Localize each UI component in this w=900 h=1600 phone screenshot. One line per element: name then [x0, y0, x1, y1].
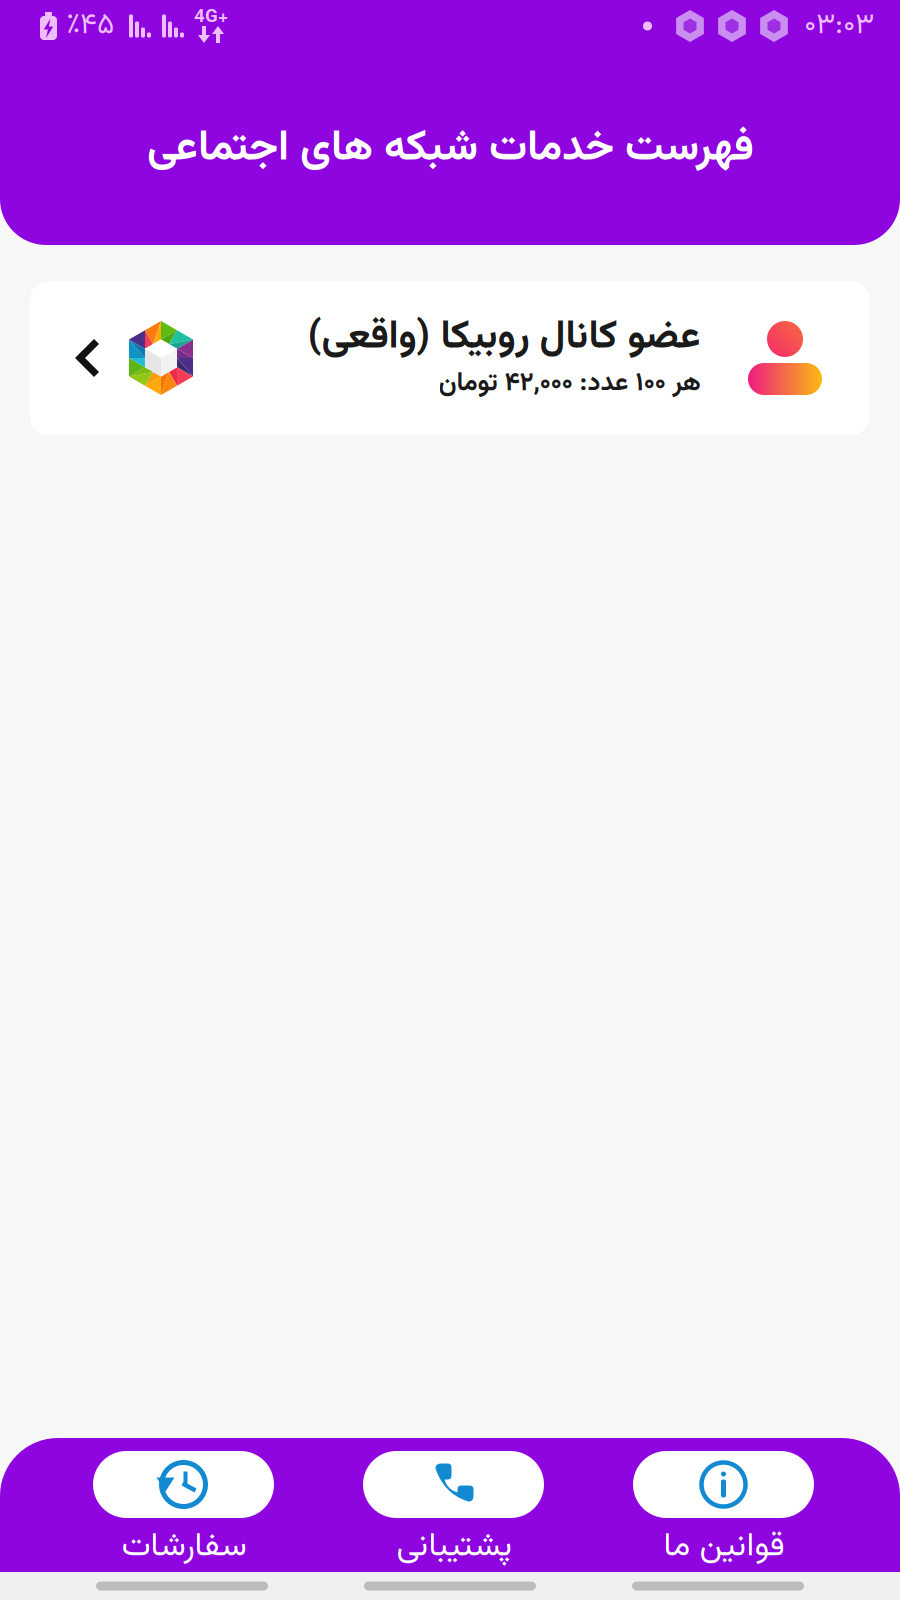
button[interactable]: قوانین ما [588, 1438, 858, 1572]
staticText: پشتیبانی [396, 1521, 511, 1573]
staticText: ۰۳:۰۳ [804, 3, 874, 49]
button[interactable]: عضو کانال روبیکا (واقعی) [30, 281, 870, 435]
staticText: عضو کانال روبیکا (واقعی) [307, 307, 700, 369]
staticText: هر ۱۰۰ عدد: ۴۲,۰۰۰ تومان [438, 364, 700, 404]
staticText: سفارشات [121, 1521, 246, 1573]
button[interactable]: پشتیبانی [318, 1438, 588, 1572]
staticText: ٪۴۵ [66, 3, 114, 49]
staticText: قوانین ما [663, 1521, 784, 1573]
staticText: فهرست خدمات شبکه های اجتماعی [146, 116, 753, 182]
button[interactable]: سفارشات [48, 1438, 318, 1572]
staticText: 4G+ [194, 3, 228, 32]
